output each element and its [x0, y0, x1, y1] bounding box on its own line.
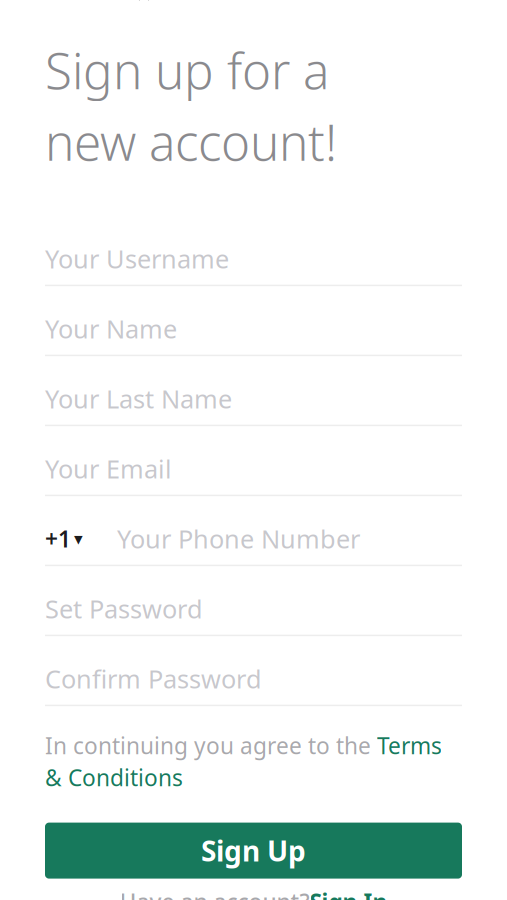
staticText: Confirm Password — [45, 662, 262, 695]
staticText: In continuing you agree to the — [45, 730, 377, 760]
staticText: ▾ — [74, 529, 83, 548]
staticText: Your Phone Number — [117, 522, 360, 555]
staticText: Have an account? — [119, 887, 309, 900]
staticText: Your Email — [45, 452, 172, 485]
button[interactable]: Country code — [45, 513, 117, 565]
staticText: Sign Up — [201, 832, 306, 869]
button[interactable]: & Conditions — [45, 762, 183, 793]
staticText: Your Last Name — [45, 382, 232, 415]
button[interactable]: Have an account? — [45, 885, 462, 900]
staticText: Sign up for a — [45, 37, 329, 103]
button[interactable]: Sign Up — [45, 823, 462, 879]
staticText: +1 — [45, 524, 71, 554]
staticText: & Conditions — [45, 762, 183, 793]
staticText: Your Username — [45, 242, 229, 275]
staticText: Terms — [377, 730, 442, 760]
staticText: Sign In — [309, 887, 387, 900]
staticText: Your Name — [45, 312, 177, 345]
button[interactable]: Terms — [377, 730, 442, 760]
staticText: Set Password — [45, 592, 203, 625]
staticText: new account! — [45, 109, 337, 174]
